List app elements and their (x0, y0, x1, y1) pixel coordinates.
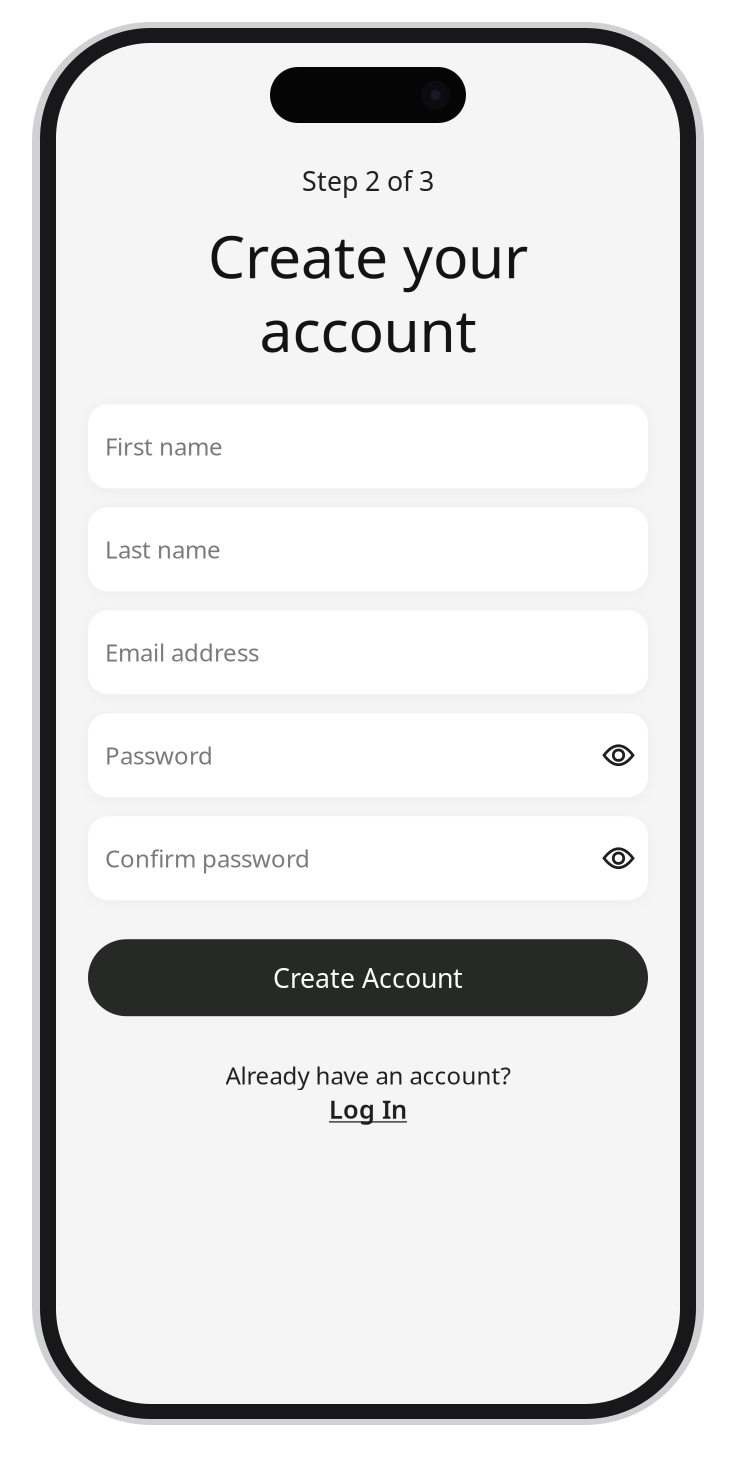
staticText: Create your (208, 216, 528, 294)
staticText: Email address (105, 636, 259, 668)
button[interactable]: Confirm password (88, 816, 648, 900)
button[interactable]: Show Password (603, 740, 634, 771)
button[interactable]: Show Confirm password (603, 843, 634, 874)
staticText: Log In (329, 1092, 407, 1126)
button[interactable]: Password (88, 713, 648, 797)
staticText: Last name (105, 533, 221, 565)
staticText: Already have an account? (225, 1059, 510, 1091)
staticText: Password (105, 739, 213, 771)
button[interactable]: Email address (88, 610, 648, 694)
button[interactable]: Log In (329, 1092, 407, 1126)
staticText: Confirm password (105, 842, 310, 874)
button[interactable]: Create Account (88, 939, 648, 1016)
button[interactable]: First name (88, 404, 648, 488)
staticText: Create Account (273, 960, 463, 995)
staticText: First name (105, 430, 223, 462)
button[interactable]: Last name (88, 507, 648, 591)
staticText: Step 2 of 3 (302, 163, 434, 198)
staticText: account (259, 290, 476, 368)
